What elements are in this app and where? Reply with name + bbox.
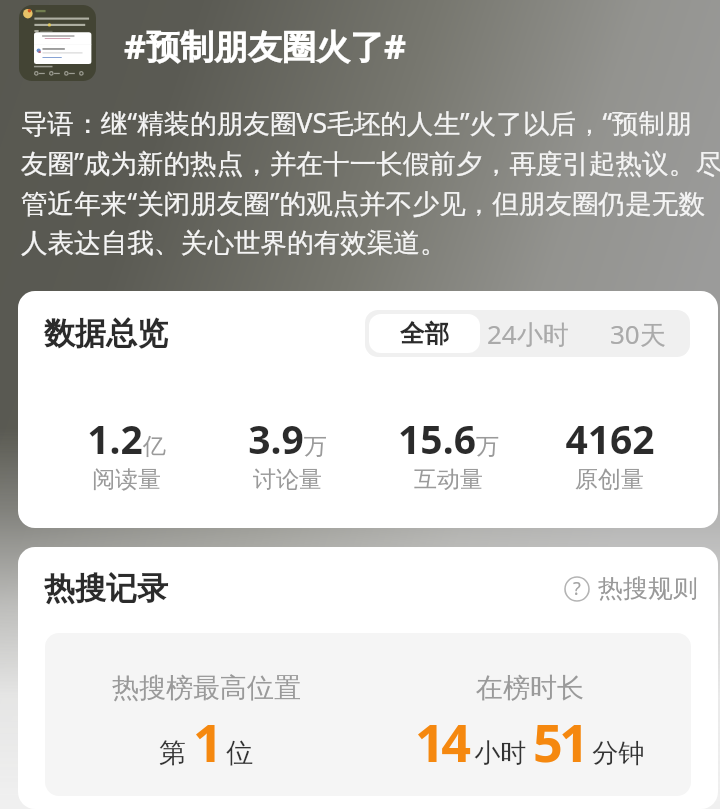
staticText: 数据总览 xyxy=(44,314,168,353)
staticText: 热搜榜最高位置 xyxy=(112,671,301,705)
staticText: 全部 xyxy=(400,318,449,349)
staticText: 在榜时长 xyxy=(476,671,584,705)
staticText: 阅读量 xyxy=(92,465,161,494)
button[interactable]: 3.9万 xyxy=(207,412,368,494)
button[interactable]: 30天 xyxy=(572,310,690,357)
button[interactable]: 全部 xyxy=(369,314,480,353)
staticText: 管近年来“关闭朋友圈”的观点并不少见，但朋友圈仍是无数 xyxy=(21,185,705,221)
staticText: 3.9万 xyxy=(248,412,327,465)
button[interactable]: 24小时 xyxy=(484,310,572,357)
staticText: 人表达自我、关心世界的有效渠道。 xyxy=(21,226,447,260)
button[interactable]: 4162 xyxy=(529,412,690,494)
button[interactable]: 1.2亿 xyxy=(45,412,207,494)
staticText: 24小时 xyxy=(487,316,569,352)
staticText: 1.2亿 xyxy=(87,412,166,465)
staticText: #预制朋友圈火了# xyxy=(124,23,406,69)
staticText: 互动量 xyxy=(414,465,483,494)
staticText: 友圈”成为新的热点，并在十一长假前夕，再度引起热议。尽 xyxy=(21,145,720,181)
staticText: 讨论量 xyxy=(253,465,322,494)
staticText: ? xyxy=(573,576,581,601)
button[interactable]: Post thumbnail xyxy=(19,5,96,81)
staticText: 原创量 xyxy=(575,465,644,494)
staticText: 4162 xyxy=(565,412,655,465)
staticText: 导语：继“精装的朋友圈VS毛坯的人生”火了以后，“预制朋 xyxy=(21,105,692,141)
staticText: 热搜规则 xyxy=(598,573,698,604)
staticText: 热搜记录 xyxy=(44,569,168,608)
button[interactable]: 15.6万 xyxy=(368,412,529,494)
staticText: 第 1 位 xyxy=(159,706,254,777)
button[interactable]: 热搜榜最高位置 xyxy=(45,633,368,796)
staticText: 14 小时 51 分钟 xyxy=(415,706,645,777)
staticText: 15.6万 xyxy=(398,412,499,465)
button[interactable]: 在榜时长 xyxy=(368,633,691,796)
button[interactable]: ? xyxy=(564,573,698,604)
staticText: 30天 xyxy=(610,316,666,352)
